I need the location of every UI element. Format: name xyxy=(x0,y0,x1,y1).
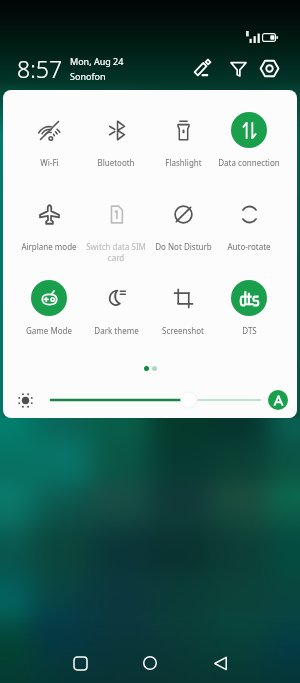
staticText: 8:57 xyxy=(17,53,63,84)
button[interactable]: Do Not Disturb xyxy=(150,196,216,252)
button[interactable]: Flashlight xyxy=(150,112,216,168)
staticText: Auto-rotate xyxy=(227,241,271,252)
staticText: Wi-Fi xyxy=(40,157,59,168)
staticText: Game Mode xyxy=(26,325,72,336)
button[interactable]: Brightness xyxy=(13,388,37,412)
button[interactable]: Auto brightness xyxy=(268,390,288,410)
button[interactable]: Settings xyxy=(256,55,282,81)
button[interactable]: Airplane mode xyxy=(16,196,82,252)
button[interactable]: Wi-Fi xyxy=(16,112,82,168)
button[interactable]: Recents xyxy=(60,643,100,683)
staticText: Screenshot xyxy=(162,325,204,336)
button[interactable]: Screenshot xyxy=(150,280,216,336)
button[interactable]: Back xyxy=(200,643,240,683)
button[interactable]: DTS xyxy=(216,280,282,336)
staticText: Flashlight xyxy=(165,157,202,168)
button[interactable]: Filter xyxy=(225,55,251,81)
button[interactable]: Game Mode xyxy=(16,280,82,336)
staticText: Data connection xyxy=(218,157,280,168)
button[interactable]: Home xyxy=(130,643,170,683)
button[interactable]: Edit xyxy=(189,55,215,81)
staticText: DTS xyxy=(242,325,257,336)
button[interactable]: Auto-rotate xyxy=(216,196,282,252)
button[interactable]: Data connection xyxy=(216,112,282,168)
staticText: Dark theme xyxy=(94,325,139,336)
button[interactable]: Switch data SIM card xyxy=(83,196,149,263)
button[interactable]: Bluetooth xyxy=(83,112,149,168)
staticText: Airplane mode xyxy=(21,241,77,252)
staticText: Sonofon xyxy=(70,70,106,82)
staticText: Bluetooth xyxy=(97,157,135,168)
staticText: Do Not Disturb xyxy=(155,241,212,252)
staticText: Switch data SIM card xyxy=(83,241,149,263)
staticText: Mon, Aug 24 xyxy=(70,55,124,67)
button[interactable]: Brightness slider xyxy=(47,389,264,411)
button[interactable]: Dark theme xyxy=(83,280,149,336)
